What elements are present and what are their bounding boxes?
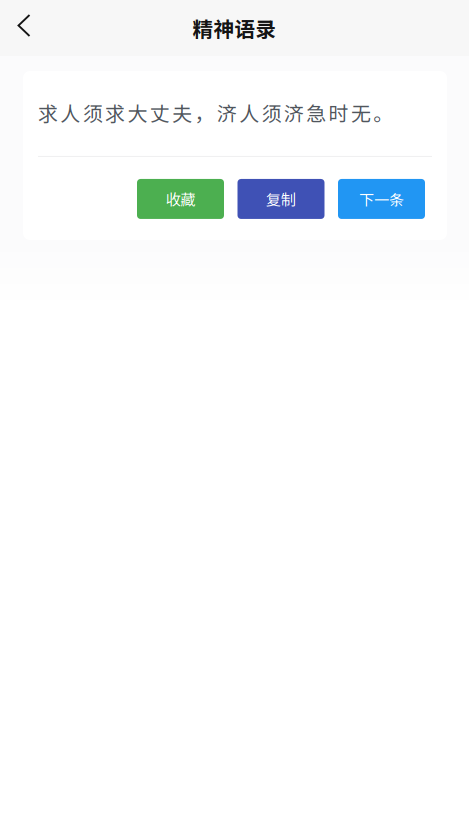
staticText: 收藏 [165, 188, 195, 210]
staticText: 精神语录 [192, 13, 276, 43]
staticText: 求人须求大丈夫，济人须济急时无。 [38, 98, 393, 127]
button[interactable]: 下一条 [338, 179, 425, 219]
button[interactable]: 收藏 [137, 179, 224, 219]
button[interactable]: 复制 [237, 179, 324, 219]
button[interactable]: Back [2, 3, 46, 47]
staticText: 下一条 [359, 188, 404, 210]
staticText: 复制 [266, 188, 296, 210]
